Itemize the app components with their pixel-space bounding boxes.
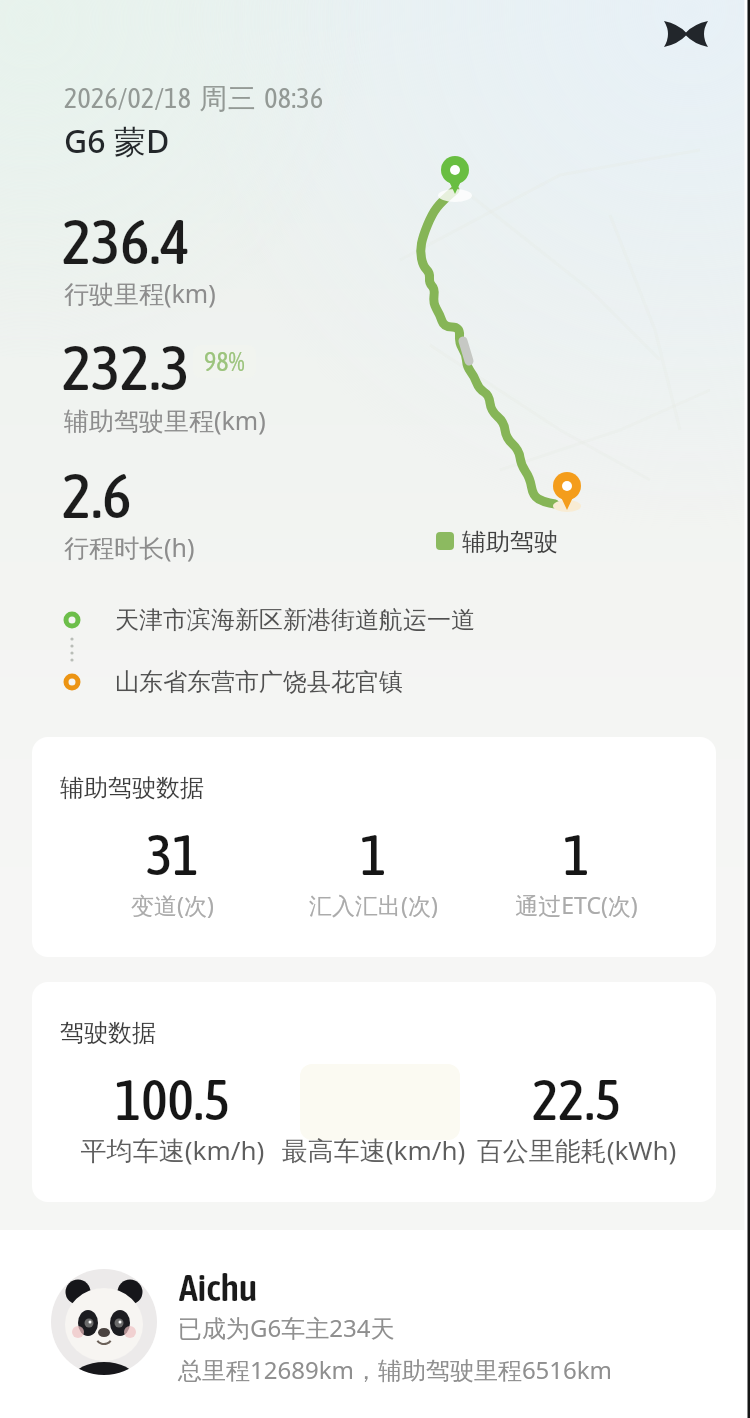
staticText: 辅助驾驶数据 (60, 773, 204, 803)
staticText: 1 (269, 823, 478, 887)
staticText: 总里程12689km，辅助驾驶里程6516km (178, 1353, 613, 1386)
staticText: 汇入汇出(次) (269, 889, 478, 920)
staticText: 行驶里程(km) (64, 276, 216, 310)
staticText: 236.4 (62, 206, 190, 277)
staticText: 平均车速(km/h) (68, 1132, 277, 1168)
staticText: 最高车速(km/h) (269, 1132, 478, 1168)
button[interactable]: 山东省东营市广饶县花官镇 (48, 660, 428, 704)
staticText: 天津市滨海新区新港街道航运一道 (115, 605, 475, 635)
staticText: Aichu (179, 1266, 258, 1310)
staticText: 行程时长(h) (64, 530, 195, 564)
staticText: 2.6 (62, 460, 132, 531)
button[interactable]: Aichu (0, 1230, 750, 1418)
staticText: 22.5 (472, 1068, 681, 1132)
staticText: 辅助驾驶里程(km) (64, 403, 266, 437)
staticText: 98% (204, 347, 245, 377)
staticText: 变道(次) (68, 889, 277, 920)
staticText: 2026/02/18 周三 08:36 (64, 81, 324, 116)
button[interactable]: 天津市滨海新区新港街道航运一道 (48, 598, 488, 642)
button[interactable] (655, 12, 717, 54)
staticText: 百公里能耗(kWh) (472, 1132, 681, 1168)
staticText: 已成为G6车主234天 (178, 1311, 395, 1344)
button[interactable]: 辅助驾驶数据 (32, 737, 716, 957)
staticText: 辅助驾驶 (462, 527, 558, 557)
staticText: G6 蒙D (64, 119, 170, 163)
staticText: 100.5 (68, 1068, 277, 1132)
button[interactable]: 驾驶数据 (32, 982, 716, 1202)
staticText: 山东省东营市广饶县花官镇 (115, 667, 403, 697)
staticText: 通过ETC(次) (472, 889, 681, 920)
staticText: 1 (472, 823, 681, 887)
staticText: 驾驶数据 (60, 1018, 156, 1048)
staticText: 31 (68, 823, 277, 887)
staticText: 232.3 (62, 332, 190, 403)
